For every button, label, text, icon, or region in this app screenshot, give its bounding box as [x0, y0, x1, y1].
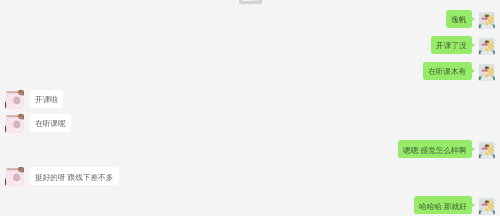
- button[interactable]: My avatar: [477, 10, 496, 29]
- button[interactable]: 嗯嗯 感觉怎么样啊: [398, 140, 472, 158]
- button[interactable]: Contact avatar: [5, 90, 24, 109]
- staticText: 在听课呢: [35, 119, 66, 129]
- button[interactable]: 开课啦: [30, 90, 63, 108]
- button[interactable]: My avatar: [477, 36, 496, 55]
- staticText: 哈哈哈 那就好: [419, 201, 467, 211]
- staticText: 在听课木有: [428, 67, 467, 77]
- button[interactable]: 开课了没: [431, 36, 472, 54]
- button[interactable]: 22:34: [239, 0, 262, 4]
- staticText: 逸帆: [451, 15, 467, 25]
- button[interactable]: Contact avatar: [5, 114, 24, 133]
- staticText: 挺好的呀 跟线下差不多: [35, 172, 114, 182]
- button[interactable]: 逸帆: [446, 10, 472, 28]
- button[interactable]: 挺好的呀 跟线下差不多: [30, 167, 119, 185]
- button[interactable]: 哈哈哈 那就好: [414, 196, 472, 214]
- button[interactable]: My avatar: [477, 62, 496, 81]
- staticText: 嗯嗯 感觉怎么样啊: [403, 145, 467, 155]
- button[interactable]: My avatar: [477, 140, 496, 159]
- staticText: 22:34: [242, 0, 259, 3]
- button[interactable]: Contact avatar: [5, 167, 24, 186]
- staticText: 开课了没: [436, 41, 467, 51]
- staticText: 开课啦: [35, 95, 58, 105]
- button[interactable]: My avatar: [477, 196, 496, 215]
- button[interactable]: 在听课木有: [423, 62, 472, 80]
- button[interactable]: 在听课呢: [30, 114, 71, 132]
